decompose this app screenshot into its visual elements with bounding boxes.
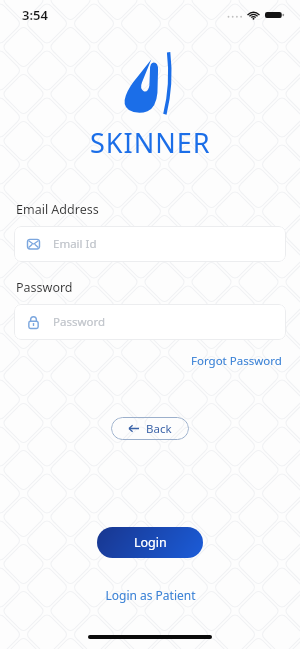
staticText: Login as Patient: [105, 587, 196, 603]
other: Email: [26, 237, 41, 252]
staticText: Password: [53, 314, 106, 330]
staticText: Email Id: [53, 236, 97, 252]
button[interactable]: Login: [97, 527, 203, 558]
staticText: Back: [146, 421, 172, 437]
other: Skinner logo: [119, 48, 181, 120]
button[interactable]: Forgot Password: [189, 351, 284, 371]
staticText: Password: [16, 279, 73, 296]
button[interactable]: Password: [14, 304, 286, 340]
button[interactable]: Email: [14, 226, 286, 262]
staticText: Email Address: [16, 201, 99, 218]
button[interactable]: Login as Patient: [101, 584, 200, 606]
other: Password: [26, 315, 41, 330]
staticText: SKINNER: [90, 124, 211, 161]
staticText: Forgot Password: [191, 353, 282, 369]
staticText: Login: [134, 534, 167, 551]
staticText: 3:54: [22, 6, 48, 24]
button[interactable]: Back: [111, 417, 189, 440]
